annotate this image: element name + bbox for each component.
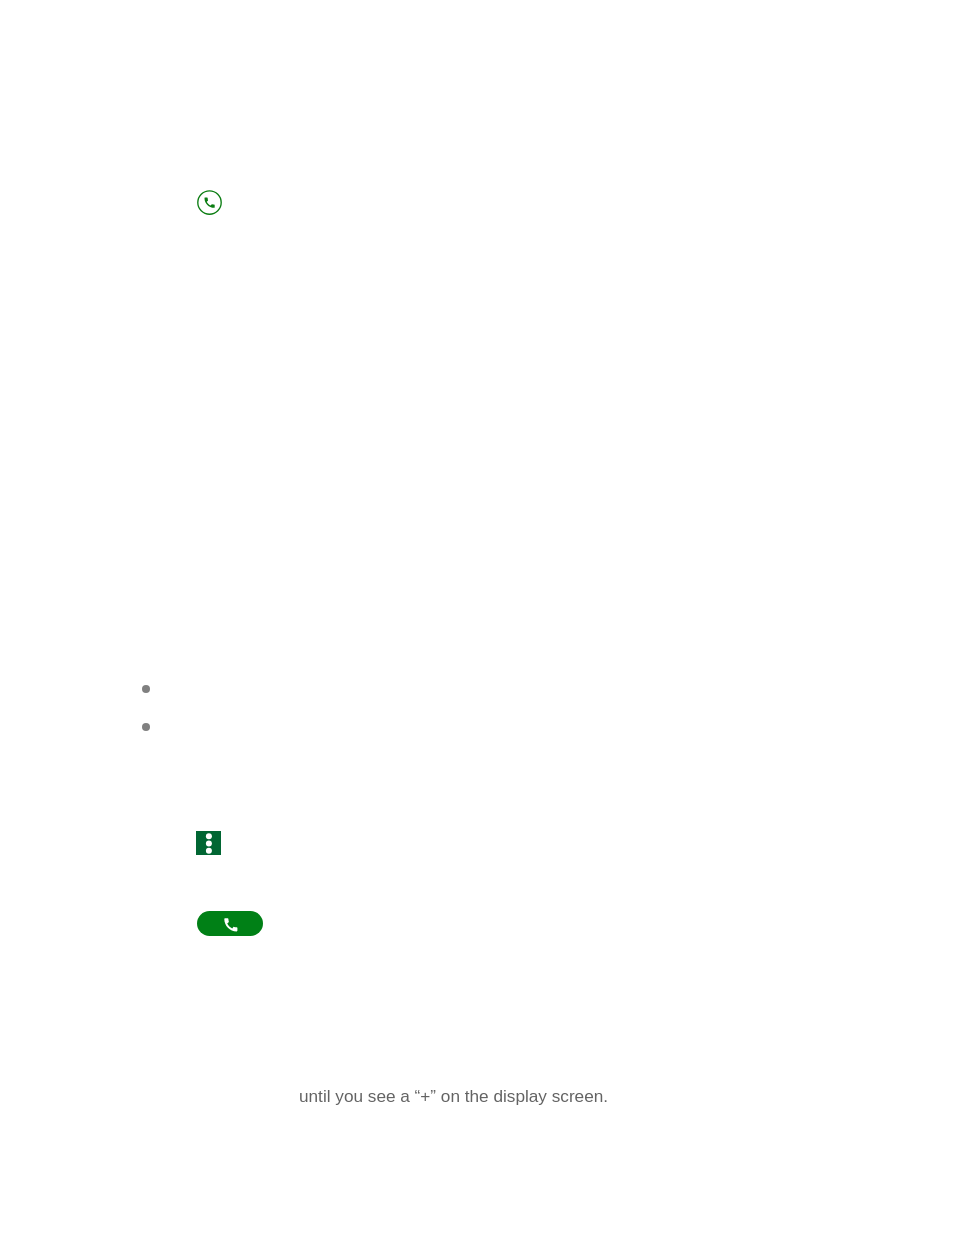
button[interactable]: More options <box>196 831 221 855</box>
button[interactable]: Call <box>197 911 263 936</box>
staticText: until you see a “+” on the display scree… <box>299 1086 609 1105</box>
button[interactable]: Call <box>197 190 222 215</box>
